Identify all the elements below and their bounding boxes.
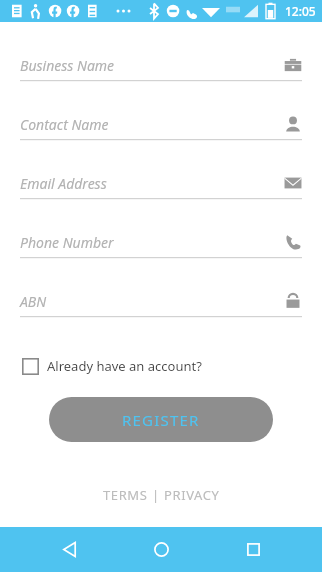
button[interactable]: Contact Name — [0, 109, 322, 168]
button[interactable]: Phone Number — [0, 227, 322, 286]
button[interactable]: PRIVACY — [160, 484, 224, 506]
button[interactable]: Recent apps — [230, 527, 276, 572]
staticText: PRIVACY — [164, 486, 220, 504]
staticText: 12:05 — [285, 3, 316, 19]
staticText: Phone Number — [20, 233, 284, 252]
staticText: | — [152, 486, 160, 504]
staticText: TERMS — [103, 486, 148, 504]
staticText: Contact Name — [20, 115, 284, 134]
button[interactable]: Back — [46, 527, 92, 572]
button[interactable]: Email Address — [0, 168, 322, 227]
button[interactable]: Already have an account? — [20, 353, 204, 379]
staticText: Email Address — [20, 174, 284, 193]
staticText: Business Name — [20, 56, 284, 75]
staticText: ABN — [20, 292, 284, 311]
button[interactable]: TERMS — [99, 484, 152, 506]
button[interactable]: Home — [138, 527, 184, 572]
button[interactable]: REGISTER — [49, 397, 273, 442]
button[interactable]: Business Name — [0, 50, 322, 109]
staticText: REGISTER — [122, 410, 200, 430]
staticText: Already have an account? — [47, 357, 202, 375]
button[interactable]: ABN — [0, 286, 322, 345]
